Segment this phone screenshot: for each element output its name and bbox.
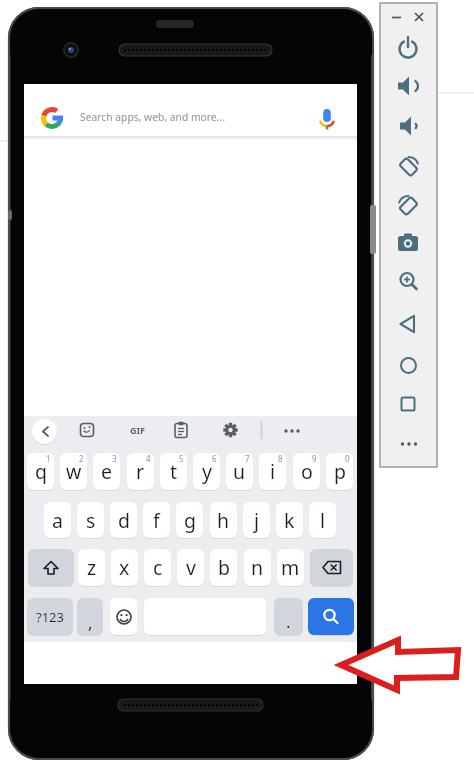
button[interactable]: a xyxy=(44,502,71,538)
staticText: i xyxy=(270,458,276,485)
button[interactable] xyxy=(28,549,74,586)
button[interactable] xyxy=(396,438,422,450)
staticText: , xyxy=(88,611,93,634)
button[interactable] xyxy=(308,598,354,635)
staticText: 0 xyxy=(345,453,350,464)
button[interactable] xyxy=(395,74,421,98)
staticText: . xyxy=(286,610,291,633)
staticText: g xyxy=(184,507,196,534)
button[interactable]: i xyxy=(259,453,286,490)
button[interactable] xyxy=(110,598,137,635)
staticText: c xyxy=(153,554,163,581)
staticText: 6 xyxy=(212,453,217,464)
button[interactable]: b xyxy=(210,549,237,586)
button[interactable] xyxy=(398,313,420,335)
staticText: h xyxy=(217,507,230,534)
button[interactable]: w xyxy=(60,453,87,490)
button[interactable]: q xyxy=(27,453,54,490)
button[interactable]: l xyxy=(309,502,336,538)
button[interactable]: o xyxy=(293,453,320,490)
button[interactable]: f xyxy=(143,502,170,538)
button[interactable] xyxy=(412,10,426,24)
button[interactable]: x xyxy=(111,549,138,586)
staticText: 3 xyxy=(112,453,117,464)
staticText: j xyxy=(254,507,260,534)
button[interactable]: n xyxy=(244,549,271,586)
staticText: 4 xyxy=(146,453,151,464)
button[interactable] xyxy=(397,232,419,252)
staticText: 7 xyxy=(245,453,250,464)
button[interactable]: d xyxy=(110,502,137,538)
button[interactable] xyxy=(79,422,96,439)
staticText: y xyxy=(202,458,212,485)
button[interactable] xyxy=(395,191,422,218)
button[interactable] xyxy=(396,36,420,60)
button[interactable] xyxy=(395,152,422,179)
button[interactable]: , xyxy=(77,598,103,635)
button[interactable]: z xyxy=(78,549,105,586)
staticText: z xyxy=(87,554,97,581)
staticText: b xyxy=(218,554,230,581)
button[interactable]: GIF xyxy=(124,422,150,438)
staticText: p xyxy=(334,458,346,485)
staticText: Search apps, web, and more... xyxy=(80,110,225,124)
staticText: a xyxy=(52,507,63,534)
button[interactable]: h xyxy=(210,502,237,538)
staticText: 9 xyxy=(312,453,317,464)
staticText: l xyxy=(320,507,326,534)
button[interactable] xyxy=(173,421,189,439)
staticText: 8 xyxy=(278,453,283,464)
button[interactable]: ?123 xyxy=(27,598,73,635)
staticText: w xyxy=(66,458,82,485)
button[interactable] xyxy=(400,396,417,413)
button[interactable] xyxy=(390,10,404,24)
button[interactable]: v xyxy=(177,549,204,586)
staticText: ?123 xyxy=(36,608,64,626)
button[interactable]: c xyxy=(144,549,171,586)
button[interactable] xyxy=(397,114,423,138)
button[interactable]: . xyxy=(274,598,303,635)
staticText: q xyxy=(35,458,47,485)
button[interactable]: y xyxy=(193,453,220,490)
button[interactable]: k xyxy=(276,502,303,538)
staticText: e xyxy=(101,458,112,485)
button[interactable]: g xyxy=(176,502,203,538)
button[interactable]: m xyxy=(277,549,304,586)
button[interactable] xyxy=(32,419,57,444)
staticText: s xyxy=(86,507,96,534)
staticText: x xyxy=(119,554,130,581)
staticText: t xyxy=(170,458,178,485)
button[interactable] xyxy=(397,270,421,294)
button[interactable]: p xyxy=(326,453,353,490)
button[interactable]: e xyxy=(93,453,120,490)
staticText: f xyxy=(153,507,160,534)
staticText: v xyxy=(186,554,196,581)
button[interactable]: r xyxy=(127,453,154,490)
button[interactable]: s xyxy=(77,502,104,538)
staticText: u xyxy=(233,458,246,485)
button[interactable] xyxy=(222,421,239,439)
staticText: r xyxy=(136,458,145,485)
staticText: 1 xyxy=(46,453,51,464)
staticText: 2 xyxy=(79,453,84,464)
button[interactable] xyxy=(310,549,353,586)
staticText: o xyxy=(301,458,313,485)
button[interactable]: j xyxy=(243,502,270,538)
button[interactable]: u xyxy=(226,453,253,490)
staticText: m xyxy=(281,554,300,581)
staticText: 5 xyxy=(179,453,184,464)
staticText: k xyxy=(284,507,295,534)
button[interactable]: t xyxy=(160,453,187,490)
staticText: d xyxy=(118,507,130,534)
button[interactable] xyxy=(398,355,419,376)
staticText: GIF xyxy=(130,424,145,436)
button[interactable] xyxy=(24,88,357,137)
staticText: n xyxy=(251,554,264,581)
